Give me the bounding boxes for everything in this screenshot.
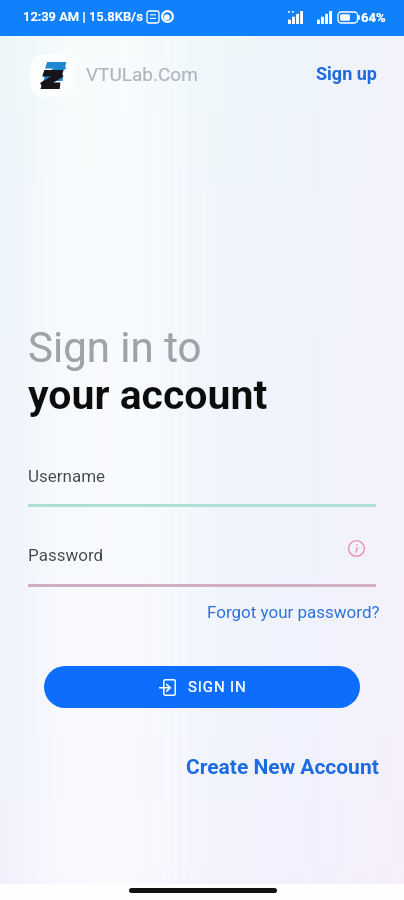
button[interactable]: VTULab logo (30, 54, 74, 97)
staticText: 64% (361, 10, 386, 25)
button[interactable]: Sign up (316, 63, 377, 84)
staticText: 12:39 AM | 15.8KB/s (23, 9, 143, 24)
button[interactable]: Create New Account (186, 755, 379, 780)
staticText: VTULab.Com (86, 63, 198, 85)
staticText: Username (28, 466, 106, 486)
staticText: Sign in to (28, 323, 202, 372)
staticText: SIGN IN (188, 678, 247, 696)
button[interactable]: Password error info (344, 536, 368, 560)
button[interactable]: SIGN IN (44, 666, 360, 708)
button[interactable]: Forgot your password? (207, 602, 380, 622)
staticText: your account (28, 371, 268, 419)
staticText: Password (28, 545, 104, 565)
